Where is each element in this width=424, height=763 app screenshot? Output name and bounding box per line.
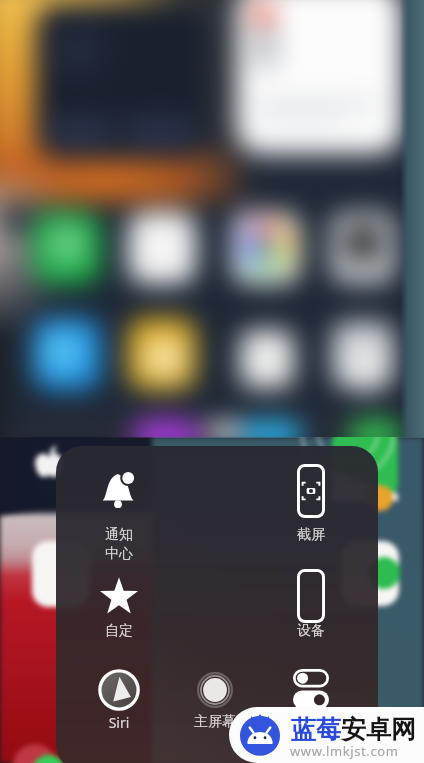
- staticText: 控制: [263, 713, 359, 731]
- button[interactable]: Home: [167, 658, 263, 750]
- staticText: 通知 中心: [71, 526, 167, 562]
- staticText: 主屏幕: [167, 713, 263, 731]
- button[interactable]: Device: [263, 564, 359, 656]
- staticText: Siri: [71, 713, 167, 732]
- staticText: 安卓网: [341, 714, 416, 745]
- button[interactable]: Siri: [71, 658, 167, 750]
- button[interactable]: Screenshot: [263, 459, 359, 551]
- staticText: 设备: [263, 622, 359, 640]
- staticText: 蓝莓: [291, 714, 341, 745]
- button[interactable]: Notification Center: [71, 458, 167, 550]
- staticText: 截屏: [263, 526, 359, 544]
- staticText: 自定: [71, 622, 167, 640]
- button[interactable]: Custom: [71, 564, 167, 656]
- staticText: www.lmkjst.com: [290, 742, 399, 760]
- button[interactable]: Control Center: [263, 657, 359, 749]
